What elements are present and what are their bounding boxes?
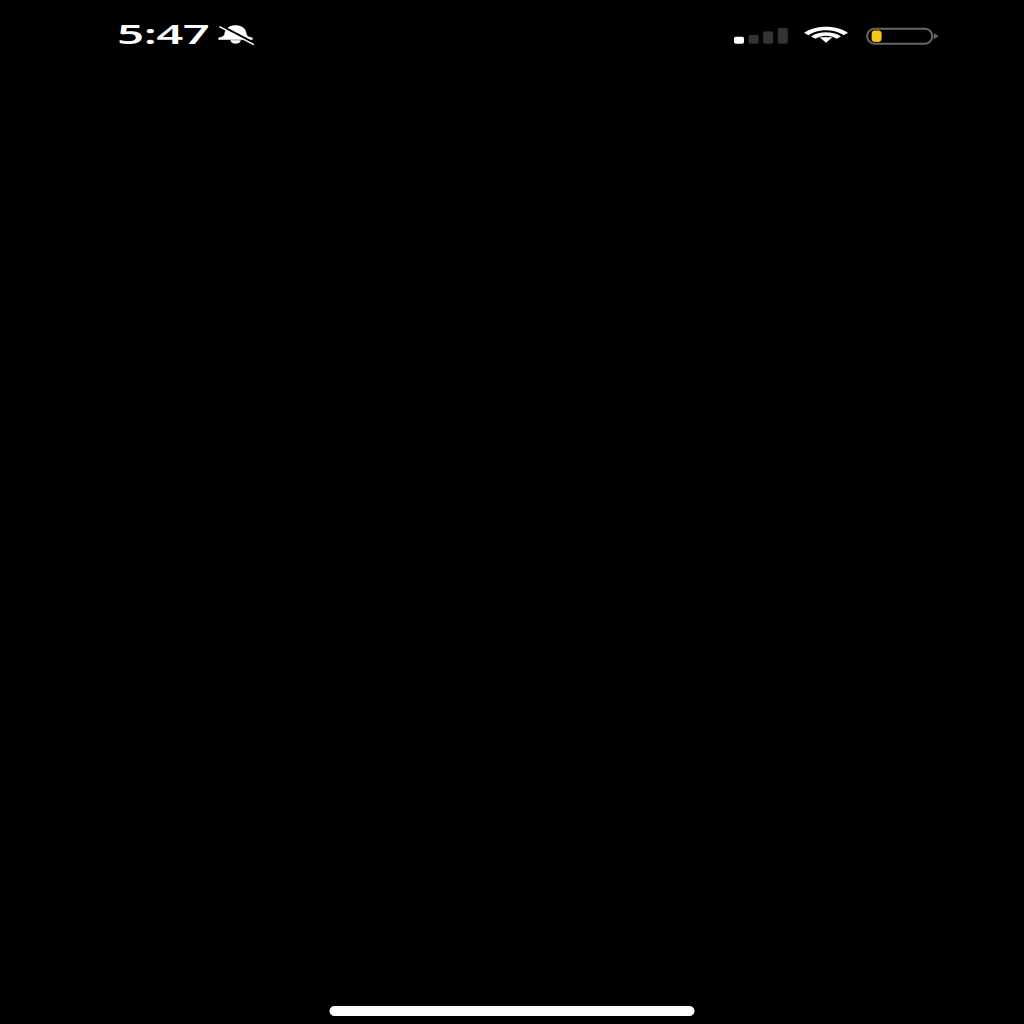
staticText: 5:47	[117, 16, 169, 51]
